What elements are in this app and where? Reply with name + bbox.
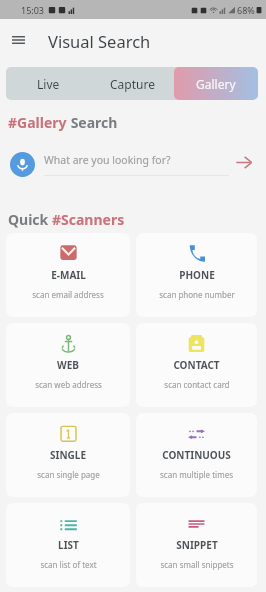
button[interactable]: WEB [6,323,130,407]
button[interactable]: Capture [90,67,174,100]
staticText: SINGLE [50,448,86,462]
button[interactable]: CONTINUOUS [136,413,257,497]
button[interactable]: Menu [2,24,34,56]
staticText: LIST [58,538,79,552]
staticText: Gallery [196,76,236,92]
button[interactable]: Live [6,67,90,100]
button[interactable]: Voice search [10,152,35,177]
staticText: PHONE [179,268,215,282]
button[interactable]: Search [233,151,255,173]
staticText: Quick [8,210,52,229]
staticText: #Scanners [52,210,125,229]
staticText: WEB [57,358,79,372]
staticText: What are you looking for? [44,153,171,167]
staticText: scan single page [37,469,100,480]
staticText: scan web address [35,379,102,390]
staticText: scan phone number [159,289,235,300]
staticText: scan email address [32,289,104,300]
staticText: SNIPPET [176,538,218,552]
button[interactable]: E-MAIL [6,233,130,317]
button[interactable]: CONTACT [136,323,257,407]
staticText: #Gallery [8,113,67,132]
staticText: E-MAIL [51,268,86,282]
button[interactable]: Gallery [174,67,258,100]
staticText: scan small snippets [160,559,234,570]
staticText: 15:03 [21,4,45,16]
staticText: Visual Search [48,30,151,52]
staticText: scan list of text [40,559,97,570]
button[interactable]: SINGLE [6,413,130,497]
button[interactable]: SNIPPET [136,503,257,587]
staticText: CONTACT [173,358,220,372]
staticText: scan multiple times [160,469,233,480]
staticText: Live [37,76,60,92]
staticText: Search [67,113,118,132]
staticText: scan contact card [164,379,230,390]
staticText: 68% [237,4,255,16]
button[interactable]: PHONE [136,233,257,317]
staticText: Capture [110,76,155,92]
staticText: CONTINUOUS [162,448,231,462]
button[interactable]: LIST [6,503,130,587]
